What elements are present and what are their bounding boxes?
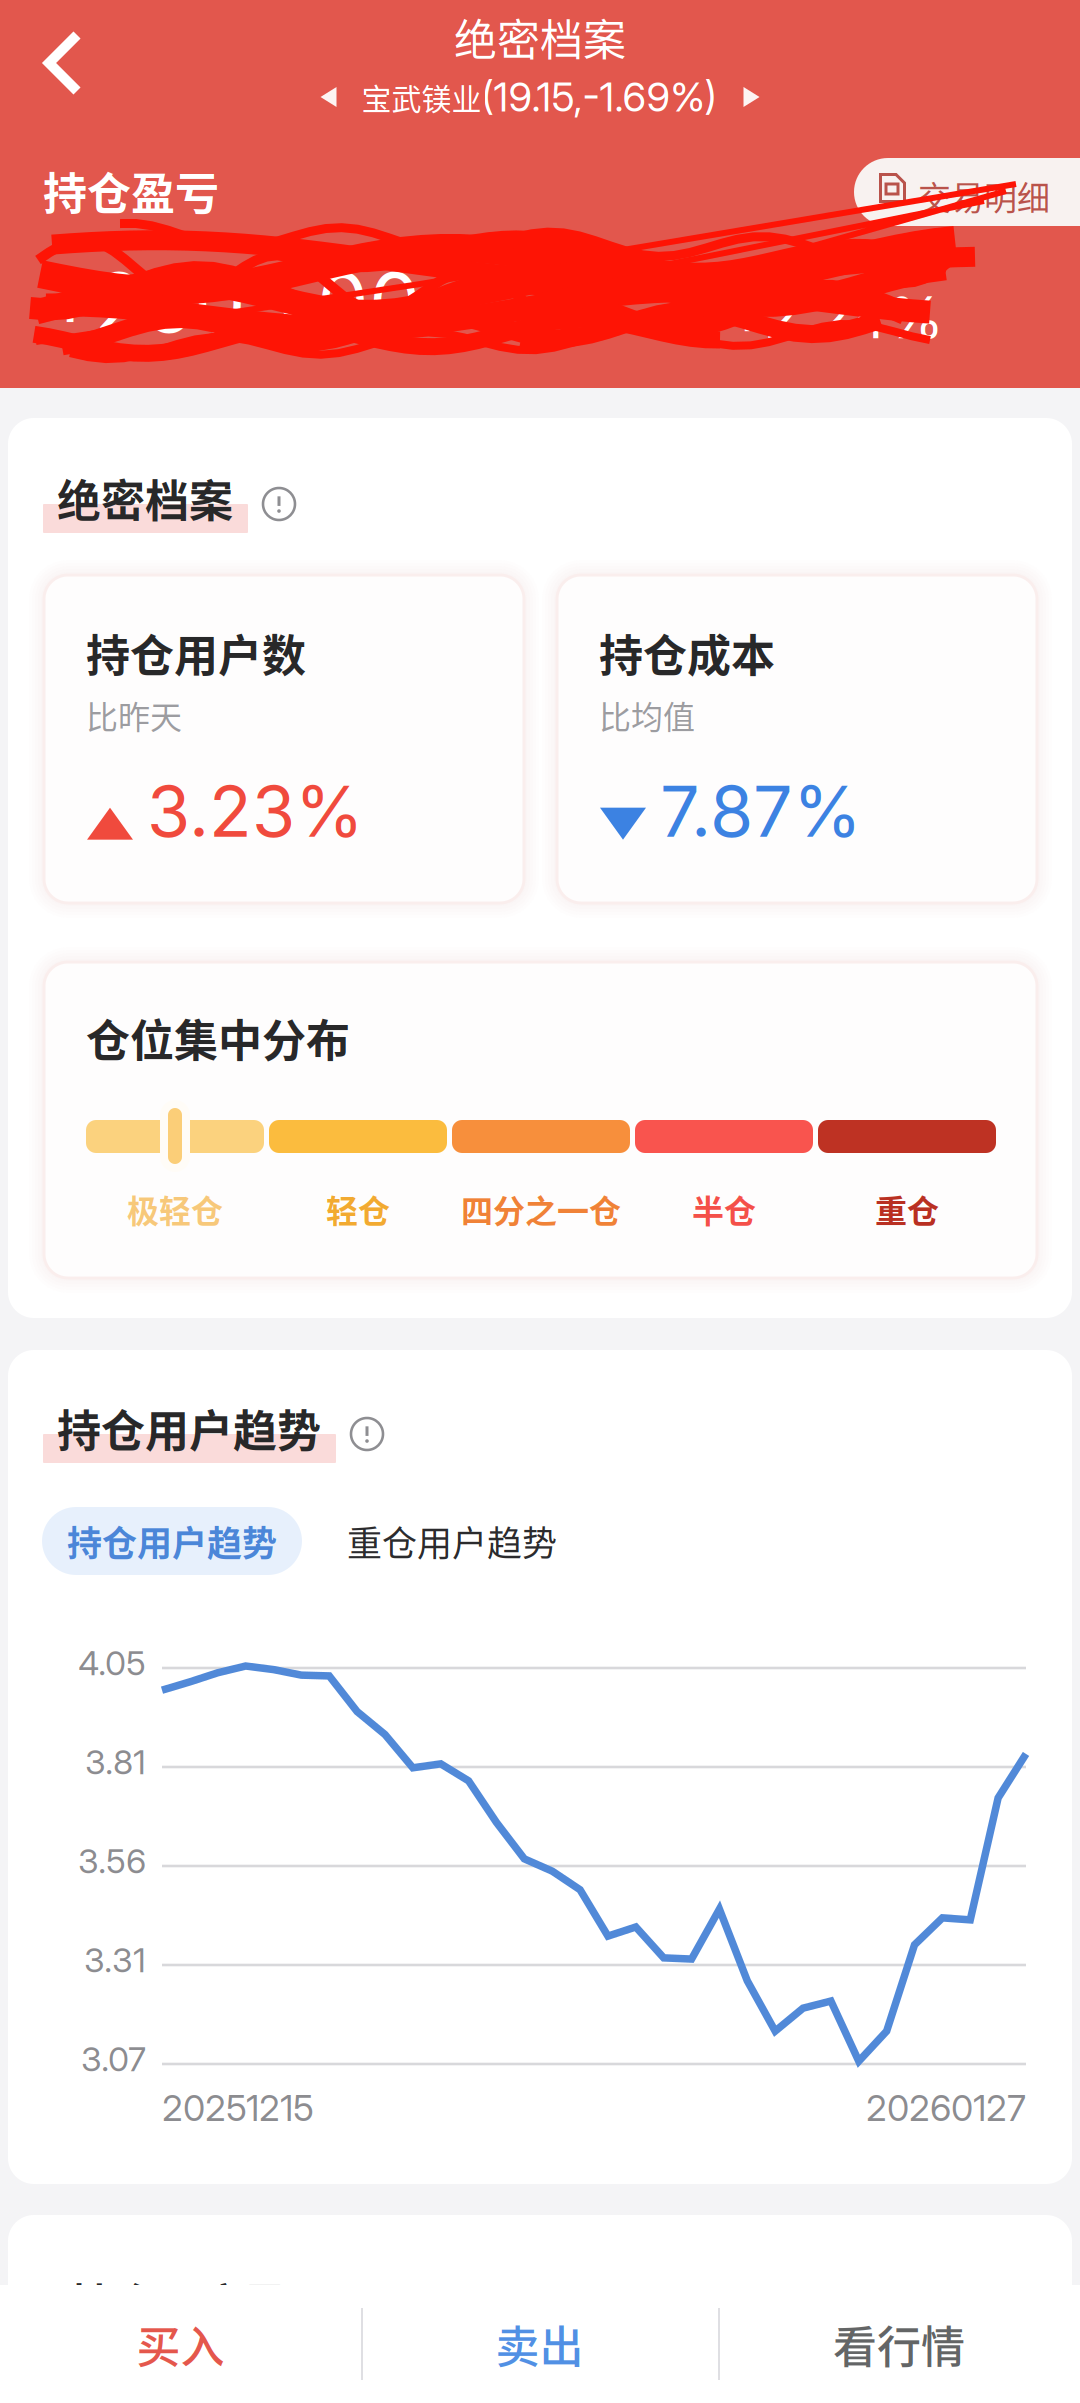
staticText: 7.87%	[660, 769, 862, 854]
staticText: (19.15,-1.69%)	[481, 73, 716, 121]
staticText: 20260127	[866, 2086, 1026, 2130]
staticText: 比均值	[599, 692, 695, 738]
staticText: 买入	[136, 2312, 224, 2376]
staticText: 持仓盈亏	[43, 159, 219, 223]
staticText: 看行情	[833, 2312, 965, 2376]
staticText: 重仓	[875, 1186, 939, 1232]
button[interactable]: 重仓用户趋势	[347, 1507, 557, 1575]
staticText: 交易明细	[918, 172, 1050, 220]
staticText: 持仓成本	[599, 621, 775, 685]
button[interactable]: 卖出	[361, 2285, 718, 2403]
staticText: +2503.00	[43, 253, 421, 352]
staticText: 持仓用户数	[86, 621, 306, 685]
staticText: +2.24%	[728, 282, 944, 352]
staticText: 绝密档案	[57, 466, 233, 530]
staticText: 3.23%	[147, 769, 364, 854]
button[interactable]: 交易明细	[854, 158, 1080, 226]
staticText: 轻仓	[326, 1186, 390, 1232]
staticText: 3.56	[78, 1840, 146, 1881]
staticText: 3.07	[81, 2038, 146, 2079]
staticText: 持仓用户趋势	[57, 1396, 321, 1460]
staticText: 4.05	[78, 1642, 146, 1683]
staticText: 仓位集中分布	[86, 1006, 350, 1070]
button[interactable]: Back	[0, 3, 126, 123]
staticText: 宝武镁业	[361, 75, 481, 119]
staticText: 比昨天	[86, 692, 182, 738]
button[interactable]: 看行情	[718, 2285, 1080, 2403]
staticText: 重仓用户趋势	[347, 1516, 557, 1566]
staticText: 20251215	[162, 2086, 314, 2130]
staticText: 卖出	[495, 2312, 583, 2376]
button[interactable]: 持仓用户趋势	[42, 1507, 302, 1575]
staticText: 3.81	[85, 1741, 146, 1782]
staticText: 绝密档案	[454, 6, 626, 68]
staticText: 四分之一仓	[461, 1186, 621, 1232]
staticText: 半仓	[692, 1186, 756, 1232]
staticText: 持仓用户趋势	[67, 1516, 277, 1566]
staticText: 3.31	[84, 1939, 146, 1980]
button[interactable]: 买入	[0, 2285, 361, 2403]
staticText: 极轻仓	[127, 1186, 223, 1232]
staticText: 持仓用户盈亏	[70, 2270, 334, 2334]
